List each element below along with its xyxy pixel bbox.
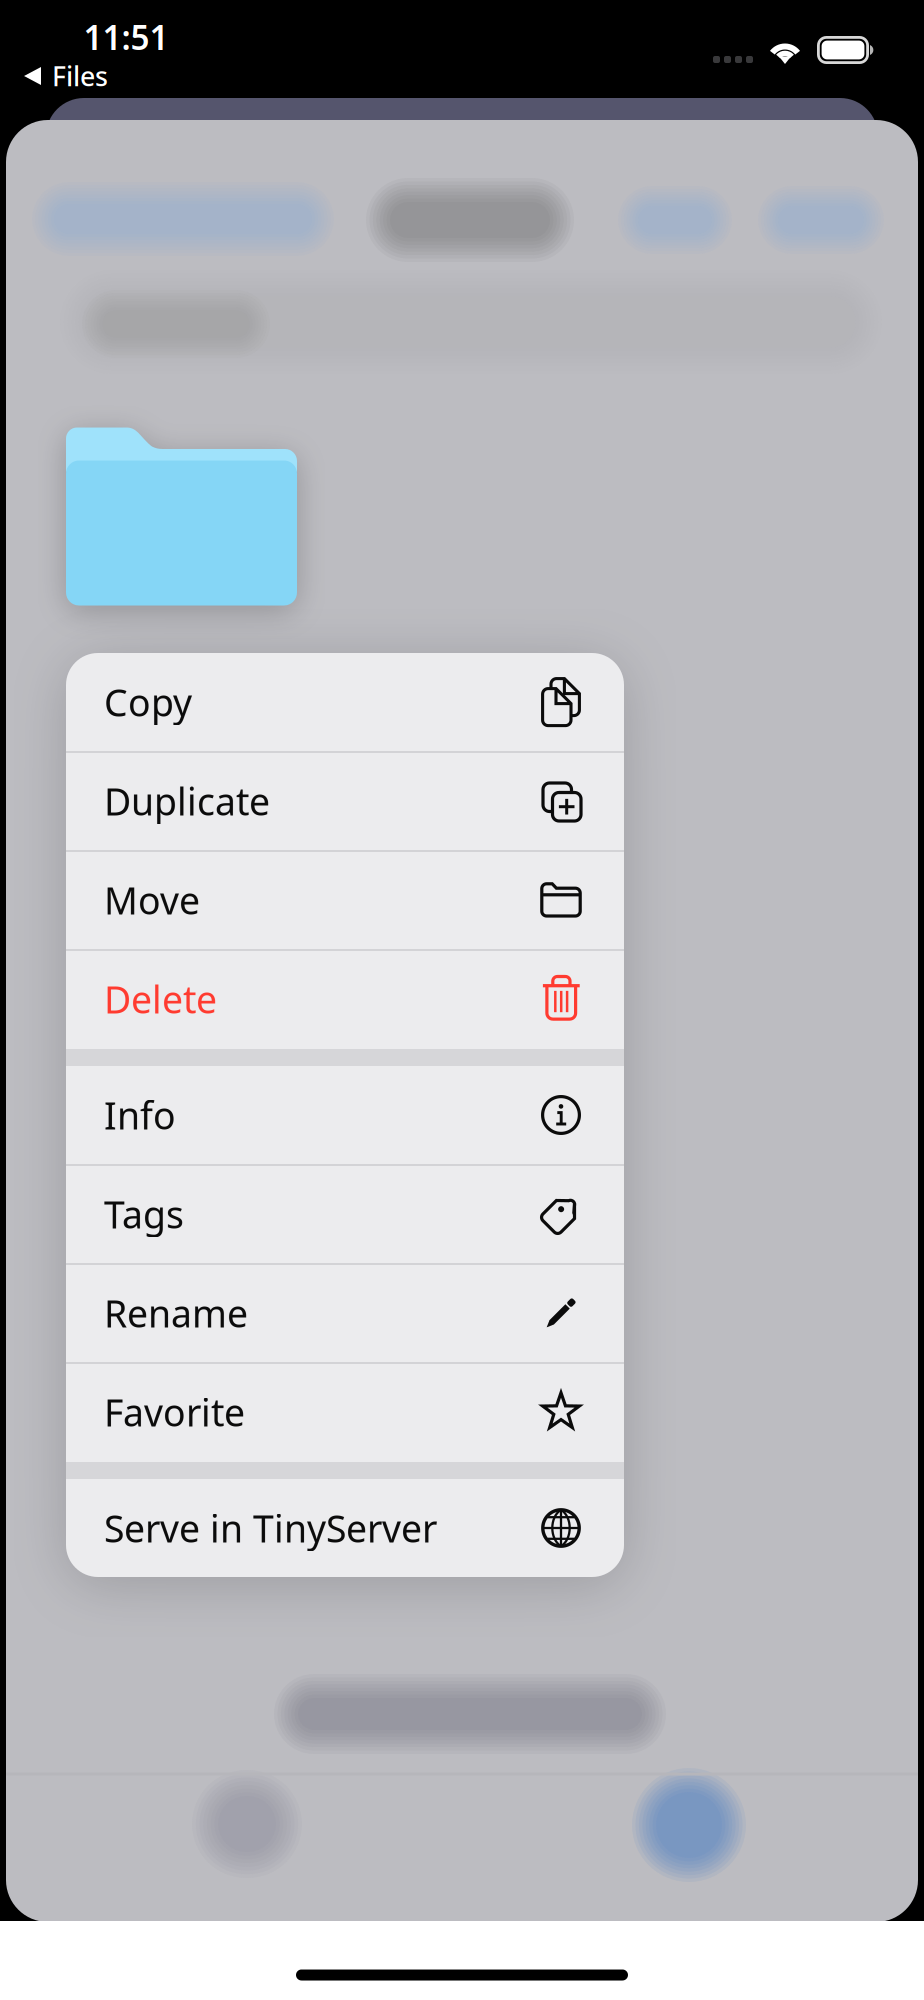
staticText: Copy	[104, 677, 192, 727]
staticText: Serve in TinyServer	[104, 1503, 437, 1553]
button[interactable]: Delete	[66, 949, 624, 1048]
button[interactable]: Duplicate	[66, 751, 624, 850]
button[interactable]: Serve in TinyServer	[66, 1478, 624, 1577]
button[interactable]: Copy	[66, 652, 624, 751]
button[interactable]: Move	[66, 850, 624, 949]
staticText: Tags	[104, 1189, 184, 1239]
staticText: Duplicate	[104, 776, 270, 826]
button[interactable]: Favorite	[66, 1362, 624, 1461]
staticText: Move	[104, 875, 200, 925]
button[interactable]: Files	[24, 58, 144, 94]
staticText: 11:51	[83, 15, 168, 59]
staticText: Rename	[104, 1288, 248, 1338]
button[interactable]: Info	[66, 1065, 624, 1164]
staticText: Files	[52, 58, 108, 94]
button[interactable]: Tags	[66, 1164, 624, 1263]
button[interactable]: Rename	[66, 1263, 624, 1362]
staticText: Delete	[104, 974, 217, 1024]
staticText: Favorite	[104, 1387, 245, 1437]
staticText: Info	[104, 1090, 176, 1140]
